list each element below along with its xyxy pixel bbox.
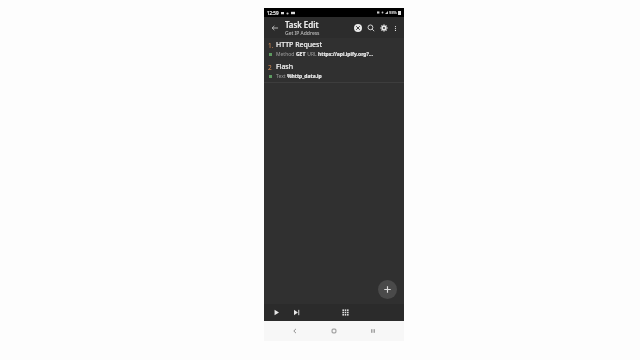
- button[interactable]: Cancel: [351, 21, 364, 34]
- button[interactable]: Grid view: [339, 306, 352, 319]
- button[interactable]: Run task: [270, 306, 283, 319]
- staticText: https://api.ipify.org?…: [318, 51, 374, 58]
- button[interactable]: Back: [268, 21, 282, 35]
- button[interactable]: Recent apps: [365, 323, 381, 339]
- staticText: %http_data.ip: [287, 73, 322, 80]
- button[interactable]: Search: [364, 21, 377, 34]
- button[interactable]: 1.: [264, 38, 404, 60]
- staticText: Get IP Address: [285, 30, 320, 37]
- staticText: GET: [296, 51, 306, 58]
- button[interactable]: 2: [264, 60, 404, 82]
- button[interactable]: Settings: [377, 21, 390, 34]
- staticText: 1.: [268, 41, 274, 50]
- staticText: 2: [268, 63, 272, 72]
- button[interactable]: Add action: [378, 280, 397, 299]
- staticText: Task Edit: [285, 19, 319, 30]
- staticText: Text: [276, 73, 287, 80]
- staticText: 12:59: [267, 10, 279, 16]
- button[interactable]: Step: [290, 306, 303, 319]
- button[interactable]: Home: [326, 323, 342, 339]
- staticText: HTTP Request: [276, 40, 322, 50]
- staticText: Flash: [276, 62, 294, 72]
- button[interactable]: Back: [287, 323, 303, 339]
- staticText: 93%: [389, 10, 397, 15]
- staticText: Method: [276, 51, 296, 58]
- staticText: URL: [306, 51, 318, 58]
- button[interactable]: More options: [390, 23, 400, 33]
